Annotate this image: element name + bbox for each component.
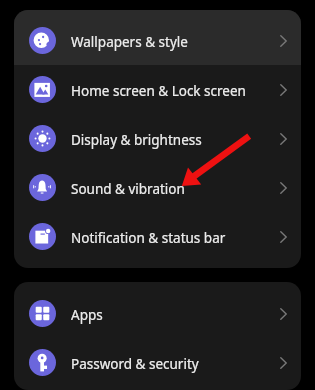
button[interactable]: Password & security xyxy=(14,338,301,387)
button[interactable]: Wallpapers & style xyxy=(14,10,301,65)
button[interactable]: Notification & status bar xyxy=(14,212,301,261)
button[interactable]: Sound & vibration xyxy=(14,163,301,212)
staticText: Notification & status bar xyxy=(71,229,226,247)
staticText: Password & security xyxy=(71,355,199,373)
staticText: Home screen & Lock screen xyxy=(71,82,246,100)
staticText: Wallpapers & style xyxy=(71,33,188,51)
staticText: Sound & vibration xyxy=(71,180,185,198)
button[interactable]: Display & brightness xyxy=(14,114,301,163)
staticText: Apps xyxy=(71,306,103,324)
button[interactable]: Home screen & Lock screen xyxy=(14,65,301,114)
staticText: Display & brightness xyxy=(71,131,202,149)
button[interactable]: Apps xyxy=(14,289,301,338)
